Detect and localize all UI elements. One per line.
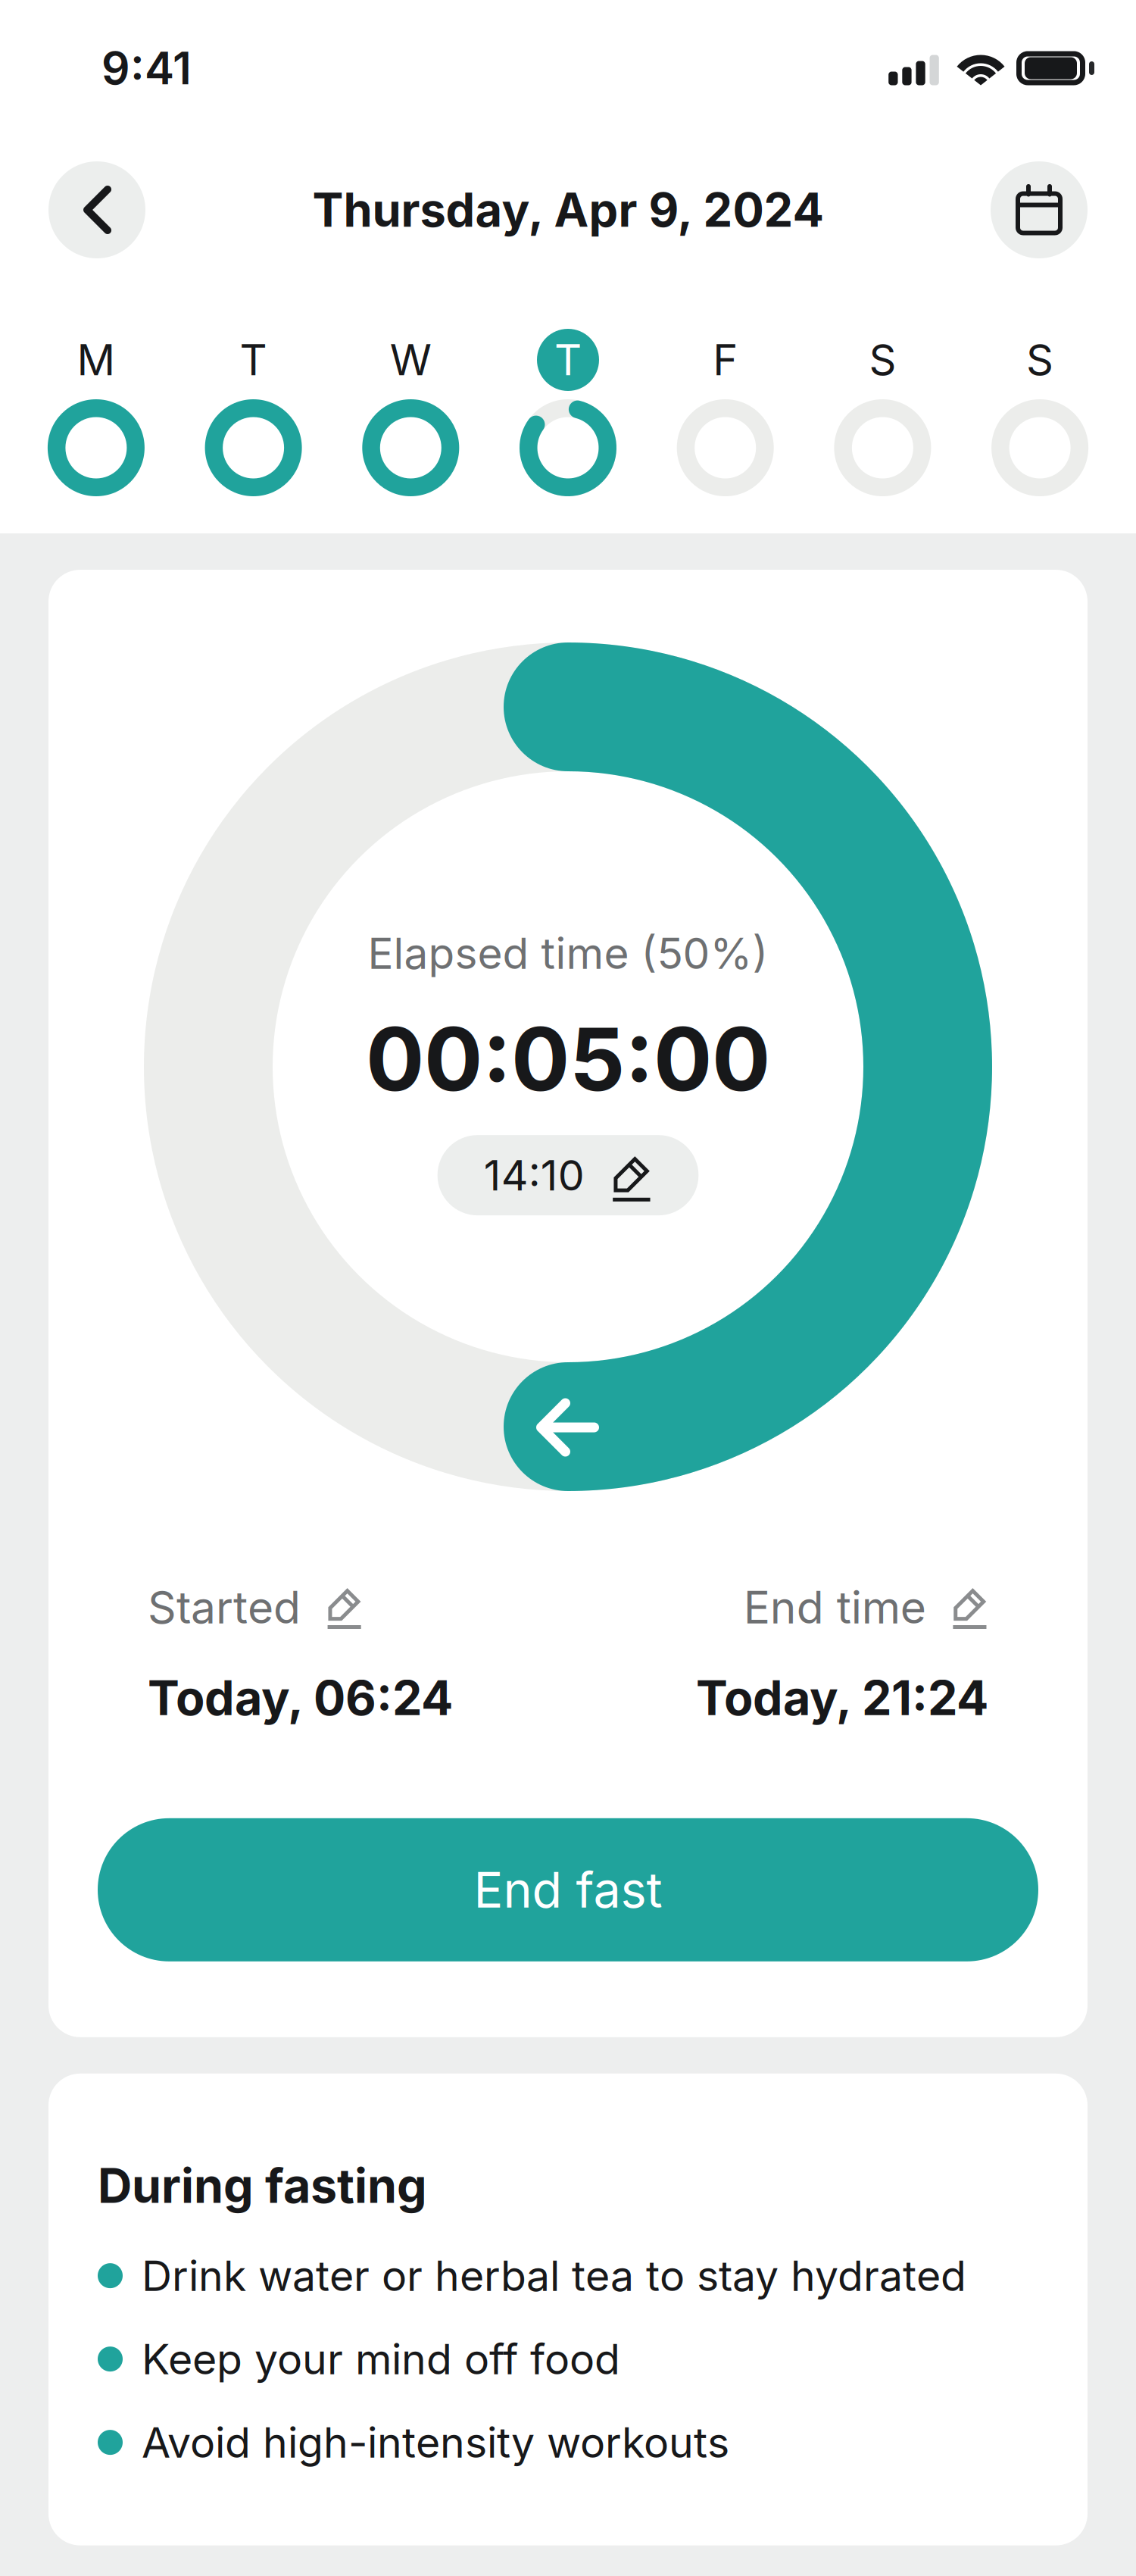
staticText: S — [869, 334, 896, 386]
button[interactable]: T — [489, 324, 647, 496]
staticText: S — [1026, 334, 1054, 386]
staticText: During fasting — [98, 2157, 427, 2214]
staticText: T — [554, 334, 582, 386]
button[interactable]: W — [332, 324, 489, 496]
button[interactable]: End fast — [98, 1818, 1038, 1961]
button[interactable]: M — [17, 324, 175, 496]
staticText: W — [390, 334, 432, 386]
staticText: T — [240, 334, 267, 386]
button[interactable]: 14:10 — [437, 1135, 698, 1215]
button[interactable]: S — [961, 324, 1119, 496]
staticText: 00:05:00 — [366, 1006, 770, 1112]
staticText: Thursday, Apr 9, 2024 — [312, 182, 824, 238]
button[interactable]: T — [175, 324, 332, 496]
staticText: Keep your mind off food — [142, 2334, 620, 2384]
staticText: End fast — [474, 1860, 662, 1919]
staticText: 9:41 — [101, 41, 192, 95]
button[interactable]: Calendar — [991, 161, 1088, 258]
staticText: Today, 06:24 — [148, 1669, 453, 1727]
staticText: Drink water or herbal tea to stay hydrat… — [142, 2250, 966, 2301]
staticText: M — [77, 334, 115, 386]
button[interactable]: Back — [48, 161, 145, 258]
button[interactable]: F — [647, 324, 804, 496]
staticText: Elapsed time (50%) — [368, 927, 768, 979]
staticText: End time — [744, 1580, 926, 1634]
staticText: F — [713, 334, 738, 386]
staticText: Avoid high-intensity workouts — [142, 2417, 729, 2468]
staticText: 14:10 — [484, 1150, 584, 1201]
staticText: Started — [148, 1580, 301, 1634]
staticText: Today, 21:24 — [696, 1669, 988, 1727]
button[interactable]: S — [804, 324, 961, 496]
